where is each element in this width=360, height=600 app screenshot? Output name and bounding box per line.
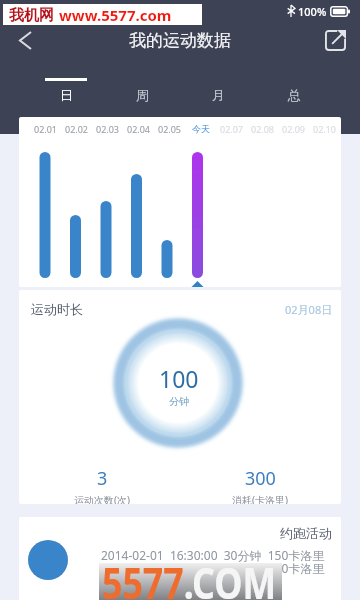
staticText: 02.04 [127,123,151,135]
button[interactable]: 日 [28,58,104,118]
button[interactable]: 周 [104,58,180,118]
staticText: 运动时长 [31,301,83,317]
staticText: 日 [60,87,73,103]
staticText: 约跑活动 [280,525,332,541]
staticText: 2014-02-01 16:30:00 30分钟 150卡洛里 [101,560,325,576]
button[interactable]: 月 [180,58,256,118]
staticText: 今天 [192,123,210,134]
staticText: 02.10 [313,123,337,135]
staticText: 我的运动数据 [129,30,231,51]
staticText: 2014-02-01 16:30:00 30分钟 150卡洛里 [101,547,325,563]
staticText: 300 [245,466,276,491]
button[interactable]: 约跑活动 [19,517,341,600]
staticText: 5577 [102,553,184,600]
staticText: 02月08日 [285,302,333,317]
staticText: 运动次数(次) [74,493,130,504]
staticText: 我机网 [9,6,54,25]
staticText: www.5577.com [59,5,172,25]
staticText: 周 [136,87,149,103]
staticText: 消耗(卡洛里) [232,493,288,504]
staticText: 月 [212,87,225,103]
staticText: 总 [288,87,301,103]
staticText: 02.05 [158,123,182,135]
staticText: 02.09 [282,123,306,135]
staticText: 100% [298,4,327,19]
staticText: .COM [184,553,277,600]
staticText: 02.08 [251,123,275,135]
button[interactable]: Share [319,24,351,56]
staticText: 分钟 [169,395,189,408]
button[interactable]: Back [7,22,43,58]
staticText: 100 [159,363,199,394]
staticText: 02.02 [65,123,89,135]
staticText: 02.03 [96,123,120,135]
staticText: 02.07 [220,123,244,135]
staticText: 3 [97,466,108,491]
staticText: 02.01 [34,123,58,135]
button[interactable]: 3 [52,466,152,504]
button[interactable]: 300 [210,466,310,504]
button[interactable]: 总 [256,58,332,118]
